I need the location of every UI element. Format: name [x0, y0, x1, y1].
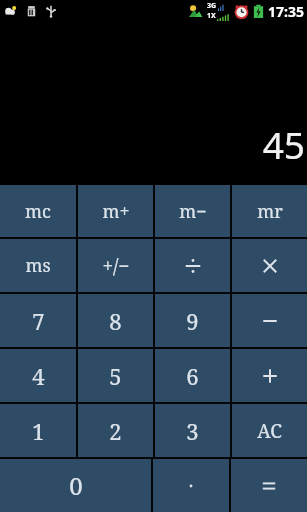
- staticText: m−: [179, 199, 207, 224]
- staticText: 2: [109, 416, 122, 446]
- button[interactable]: ms: [0, 239, 76, 292]
- button[interactable]: m+: [78, 185, 153, 237]
- staticText: 3: [186, 416, 199, 446]
- staticText: ms: [25, 253, 51, 278]
- staticText: 45: [262, 119, 305, 169]
- button[interactable]: 9: [155, 294, 230, 347]
- button[interactable]: 2: [78, 404, 153, 457]
- button[interactable]: 5: [78, 349, 153, 402]
- staticText: m+: [102, 199, 130, 224]
- staticText: 9: [186, 306, 199, 336]
- button[interactable]: AC: [232, 404, 307, 457]
- button[interactable]: Divide: [155, 239, 230, 292]
- button[interactable]: +/−: [78, 239, 153, 292]
- button[interactable]: Minus: [232, 294, 307, 347]
- button[interactable]: Multiply: [232, 239, 307, 292]
- button[interactable]: Plus: [232, 349, 307, 402]
- staticText: 1: [32, 416, 45, 446]
- staticText: 4: [32, 361, 45, 391]
- staticText: mr: [257, 199, 283, 224]
- staticText: 17:35: [268, 2, 304, 21]
- staticText: 1X: [207, 11, 216, 21]
- staticText: 0: [69, 469, 83, 502]
- button[interactable]: 4: [0, 349, 76, 402]
- button[interactable]: Equals: [231, 459, 307, 512]
- button[interactable]: mr: [232, 185, 307, 237]
- staticText: mc: [25, 199, 51, 224]
- button[interactable]: 7: [0, 294, 76, 347]
- button[interactable]: Decimal point: [153, 459, 229, 512]
- staticText: 8: [109, 306, 122, 336]
- staticText: 7: [32, 306, 45, 336]
- button[interactable]: 3: [155, 404, 230, 457]
- staticText: 6: [186, 361, 199, 391]
- button[interactable]: 6: [155, 349, 230, 402]
- button[interactable]: 8: [78, 294, 153, 347]
- staticText: AC: [257, 418, 282, 444]
- button[interactable]: mc: [0, 185, 76, 237]
- button[interactable]: 0: [0, 459, 151, 512]
- staticText: 5: [109, 361, 122, 391]
- button[interactable]: 1: [0, 404, 76, 457]
- staticText: +/−: [102, 253, 130, 279]
- button[interactable]: m−: [155, 185, 230, 237]
- staticText: 3G: [207, 1, 217, 11]
